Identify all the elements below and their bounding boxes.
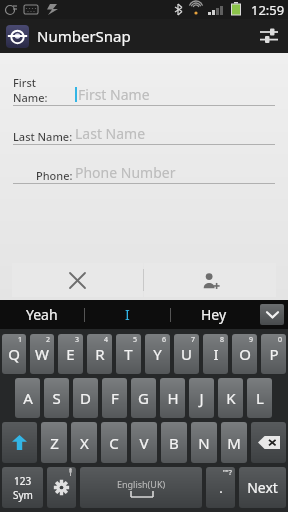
button[interactable]: D (73, 378, 98, 418)
staticText: G (138, 388, 149, 408)
button[interactable]: E (58, 334, 83, 374)
button[interactable] (251, 422, 286, 463)
staticText: J (199, 388, 204, 408)
staticText: X (80, 433, 89, 453)
button[interactable]: V (131, 422, 157, 463)
staticText: . (219, 479, 223, 497)
staticText: C (109, 433, 119, 453)
staticText: F (111, 388, 119, 408)
staticText: NumberSnap (37, 26, 131, 46)
staticText: 7 (191, 335, 196, 345)
button[interactable]: Yeah (0, 300, 84, 329)
staticText: B (169, 433, 179, 453)
staticText: O (239, 344, 251, 364)
button[interactable]: W (30, 334, 54, 374)
staticText: Z (50, 433, 59, 453)
staticText: 0 (278, 335, 283, 345)
staticText: 1 (18, 335, 23, 345)
button[interactable]: Q (2, 334, 26, 374)
staticText: Yeah (26, 305, 58, 324)
button[interactable]: A (15, 378, 40, 418)
button[interactable]: Next (239, 467, 286, 508)
button[interactable]: S (44, 378, 69, 418)
staticText: Last Name: (13, 129, 73, 144)
staticText: 3 (75, 335, 80, 345)
staticText: 6 (162, 335, 167, 345)
staticText: Hey (201, 305, 227, 324)
button[interactable]: Expand suggestions (260, 304, 284, 325)
button[interactable] (47, 467, 76, 508)
button[interactable]: Clear (12, 263, 143, 297)
staticText: Last Name (75, 124, 146, 143)
staticText: K (226, 388, 236, 408)
staticText: Phone: (36, 168, 73, 183)
button[interactable]: P (261, 334, 286, 374)
staticText: 12:59 (251, 1, 285, 19)
staticText: English(UK) (117, 478, 166, 490)
staticText: N (198, 433, 210, 453)
button[interactable]: Settings (250, 19, 288, 53)
staticText: 5 (133, 335, 138, 345)
button[interactable]: English(UK) (80, 467, 202, 508)
staticText: L (256, 388, 264, 408)
button[interactable]: T (116, 334, 141, 374)
button[interactable]: Phone Number (75, 161, 275, 183)
button[interactable]: F (102, 378, 127, 418)
staticText: P (269, 344, 279, 364)
button[interactable]: J (189, 378, 214, 418)
button[interactable] (2, 422, 37, 463)
button[interactable]: C (101, 422, 127, 463)
button[interactable]: I (203, 334, 228, 374)
staticText: ""? (223, 468, 232, 478)
staticText: Y (153, 344, 162, 364)
staticText: V (139, 433, 149, 453)
staticText: S (52, 388, 61, 408)
staticText: R (95, 344, 105, 364)
button[interactable]: R (87, 334, 112, 374)
button[interactable]: N (191, 422, 217, 463)
button[interactable]: K (218, 378, 243, 418)
staticText: First Name: (13, 75, 73, 105)
button[interactable]: 123 (2, 467, 43, 508)
button[interactable]: Z (41, 422, 67, 463)
staticText: 9 (249, 335, 254, 345)
button[interactable]: U (174, 334, 199, 374)
staticText: I (125, 305, 130, 324)
staticText: A (23, 388, 33, 408)
button[interactable]: . (206, 467, 235, 508)
button[interactable]: H (160, 378, 185, 418)
staticText: Sym (13, 488, 33, 502)
button[interactable]: I (85, 300, 170, 329)
button[interactable]: Last Name (75, 122, 275, 144)
staticText: First Name (78, 85, 150, 104)
staticText: Phone Number (75, 163, 176, 182)
button[interactable]: M (221, 422, 247, 463)
staticText: M (227, 433, 241, 453)
staticText: E (66, 344, 75, 364)
staticText: I (213, 344, 219, 364)
button[interactable]: Add contact (144, 263, 276, 297)
button[interactable]: X (71, 422, 97, 463)
staticText: 4 (104, 335, 109, 345)
staticText: H (167, 388, 179, 408)
button[interactable]: O (232, 334, 257, 374)
staticText: D (80, 388, 91, 408)
staticText: 2 (46, 335, 51, 345)
button[interactable]: G (131, 378, 156, 418)
button[interactable]: L (247, 378, 272, 418)
staticText: W (35, 344, 49, 364)
button[interactable]: Y (145, 334, 170, 374)
staticText: 8 (220, 335, 225, 345)
staticText: Next (247, 478, 278, 497)
staticText: Q (8, 344, 20, 364)
button[interactable]: Hey (171, 300, 256, 329)
button[interactable]: B (161, 422, 187, 463)
staticText: T (124, 344, 133, 364)
staticText: U (181, 344, 192, 364)
button[interactable]: First Name (75, 83, 275, 105)
staticText: 123 (14, 474, 32, 488)
